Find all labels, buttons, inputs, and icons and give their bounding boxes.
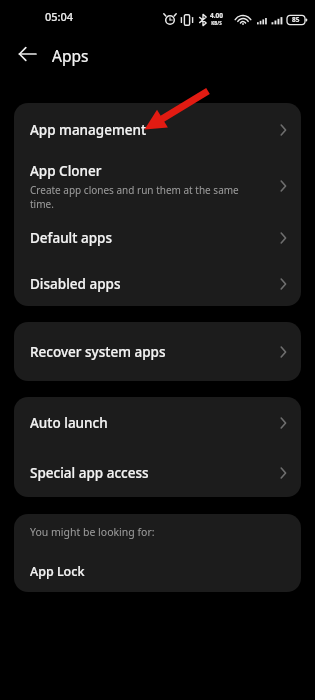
- staticText: You might be looking for:: [30, 525, 155, 539]
- staticText: Special app access: [30, 464, 149, 482]
- button[interactable]: Auto launch: [14, 397, 301, 449]
- button[interactable]: Recover system apps: [14, 322, 301, 381]
- button[interactable]: Disabled apps: [14, 261, 301, 306]
- button[interactable]: App Lock: [14, 550, 301, 592]
- button[interactable]: App management: [14, 103, 301, 157]
- staticText: App Cloner: [30, 162, 102, 180]
- staticText: Apps: [52, 45, 89, 66]
- button[interactable]: Special app access: [14, 449, 301, 497]
- staticText: App management: [30, 121, 147, 139]
- staticText: 05:04: [45, 9, 74, 24]
- staticText: Create app clones and run them at the sa…: [30, 183, 261, 211]
- staticText: Default apps: [30, 229, 112, 247]
- staticText: Auto launch: [30, 414, 108, 432]
- staticText: Recover system apps: [30, 343, 166, 361]
- button[interactable]: Back: [13, 39, 43, 69]
- staticText: 4.00: [210, 11, 223, 20]
- staticText: App Lock: [30, 563, 85, 580]
- staticText: Disabled apps: [30, 275, 121, 293]
- staticText: KB/S: [211, 20, 222, 26]
- button[interactable]: App Cloner: [14, 157, 301, 215]
- staticText: 85: [292, 15, 300, 24]
- button[interactable]: Default apps: [14, 215, 301, 261]
